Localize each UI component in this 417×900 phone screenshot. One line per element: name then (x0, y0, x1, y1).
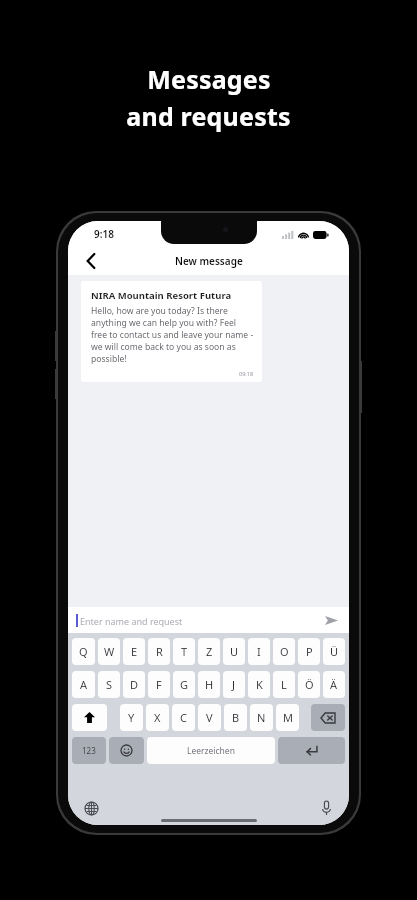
button[interactable]: E (123, 638, 145, 665)
button[interactable]: Q (72, 638, 95, 665)
staticText: 9:18 (94, 227, 114, 241)
button[interactable]: J (223, 671, 245, 698)
button[interactable]: V (198, 704, 221, 731)
button[interactable]: Leerzeichen (147, 737, 275, 764)
button[interactable]: T (173, 638, 195, 665)
staticText: Ö (305, 677, 314, 692)
button[interactable]: NIRA Mountain Resort Futura (81, 281, 262, 382)
staticText: G (180, 677, 189, 692)
staticText: D (130, 677, 139, 692)
button[interactable]: X (146, 704, 169, 731)
button[interactable]: W (98, 638, 120, 665)
button[interactable]: B (224, 704, 247, 731)
button[interactable]: Ü (323, 638, 345, 665)
staticText: R (156, 644, 163, 659)
staticText: U (230, 644, 239, 659)
staticText: O (280, 644, 289, 659)
staticText: Enter name and request (80, 615, 183, 627)
staticText: Hello, how are you today? Is there anyth… (91, 305, 254, 365)
staticText: and requests (126, 99, 291, 133)
staticText: K (256, 677, 263, 692)
staticText: Ä (330, 677, 338, 692)
staticText: I (257, 644, 261, 659)
staticText: NIRA Mountain Resort Futura (91, 289, 232, 302)
button[interactable]: Ö (298, 671, 320, 698)
button[interactable]: Back (76, 247, 106, 275)
button[interactable]: U (223, 638, 245, 665)
button[interactable]: Shift (72, 704, 107, 731)
button[interactable]: Enter name and request (68, 607, 349, 633)
button[interactable]: Backspace (311, 704, 345, 731)
button[interactable]: 123 (72, 737, 106, 764)
staticText: A (80, 677, 88, 692)
button[interactable]: A (72, 671, 95, 698)
button[interactable]: Ä (323, 671, 345, 698)
button[interactable]: R (148, 638, 170, 665)
button[interactable]: Z (198, 638, 220, 665)
button[interactable]: I (248, 638, 270, 665)
button[interactable]: D (123, 671, 145, 698)
staticText: T (181, 644, 188, 659)
button[interactable]: O (273, 638, 295, 665)
button[interactable]: Send (321, 610, 341, 630)
staticText: X (154, 710, 161, 725)
staticText: F (156, 677, 162, 692)
staticText: New message (175, 254, 243, 268)
staticText: P (306, 644, 313, 659)
button[interactable]: F (148, 671, 170, 698)
button[interactable]: P (298, 638, 320, 665)
staticText: Messages (147, 62, 271, 96)
staticText: Ü (330, 644, 339, 659)
button[interactable]: C (172, 704, 195, 731)
staticText: J (232, 677, 236, 692)
button[interactable]: K (248, 671, 270, 698)
staticText: B (232, 710, 240, 725)
staticText: V (206, 710, 213, 725)
button[interactable]: Y (120, 704, 143, 731)
staticText: Q (79, 644, 88, 659)
button[interactable]: Dictation (315, 797, 337, 819)
button[interactable]: H (198, 671, 220, 698)
button[interactable]: S (98, 671, 120, 698)
button[interactable]: M (276, 704, 299, 731)
button[interactable]: Emoji (109, 737, 144, 764)
staticText: S (106, 677, 113, 692)
staticText: L (281, 677, 287, 692)
staticText: Leerzeichen (187, 745, 235, 757)
staticText: 123 (82, 745, 96, 756)
button[interactable]: N (250, 704, 273, 731)
staticText: 09:18 (239, 370, 254, 377)
staticText: W (104, 644, 115, 659)
button[interactable]: Change keyboard language (80, 797, 102, 819)
button[interactable]: Return (278, 737, 345, 764)
staticText: M (283, 710, 293, 725)
staticText: C (180, 710, 187, 725)
staticText: N (257, 710, 266, 725)
staticText: E (131, 644, 138, 659)
button[interactable]: L (273, 671, 295, 698)
staticText: Y (128, 710, 135, 725)
staticText: H (205, 677, 214, 692)
staticText: Z (206, 644, 213, 659)
button[interactable]: G (173, 671, 195, 698)
